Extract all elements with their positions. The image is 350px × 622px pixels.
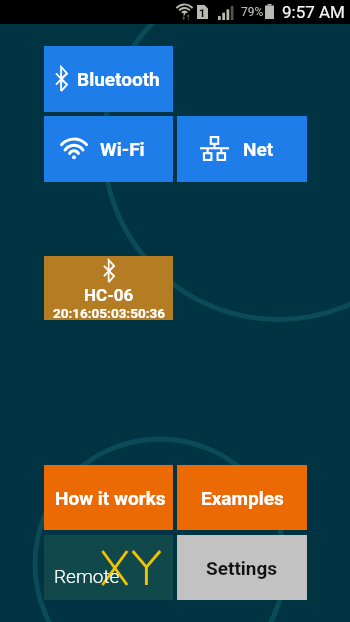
staticText: 9:57 AM <box>282 2 345 22</box>
staticText: 20:16:05:03:50:36 <box>53 305 165 320</box>
staticText: Wi-Fi <box>100 138 145 160</box>
button[interactable]: HC-06 device <box>44 256 173 320</box>
button[interactable]: Net <box>177 116 307 182</box>
staticText: Bluetooth <box>77 68 160 90</box>
button[interactable]: How it works <box>44 465 173 530</box>
staticText: Settings <box>206 557 278 579</box>
button[interactable]: Settings <box>177 535 307 600</box>
staticText: 79% <box>241 5 264 19</box>
staticText: Remote <box>54 565 120 587</box>
button[interactable]: Examples <box>177 465 307 530</box>
staticText: How it works <box>55 487 166 509</box>
staticText: Examples <box>201 487 284 509</box>
button[interactable]: Bluetooth <box>44 46 173 112</box>
button[interactable]: Wi-Fi <box>44 116 173 182</box>
button[interactable]: Remote <box>44 535 173 600</box>
staticText: HC-06 <box>84 285 134 305</box>
staticText: Net <box>243 138 274 160</box>
staticText: 1 <box>199 7 206 20</box>
